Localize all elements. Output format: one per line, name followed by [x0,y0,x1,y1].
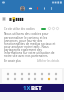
button[interactable] [13,77,17,81]
button[interactable]: More options [49,6,54,11]
staticText: BET [31,84,42,92]
button[interactable] [6,77,10,81]
button[interactable] [13,72,17,76]
button[interactable] [47,72,51,76]
button[interactable] [40,72,44,76]
button[interactable] [20,77,24,81]
staticText: Ce site utilise des cookies [4,27,35,30]
button[interactable]: Tabs [28,6,33,11]
button[interactable] [33,77,37,81]
button[interactable]: 1xBET advertisement [0,84,64,92]
button[interactable] [27,77,31,81]
staticText: Nous utilisons des cookies pour personna… [4,32,60,57]
button[interactable] [47,77,51,81]
button[interactable] [54,72,58,76]
staticText: 1X [23,84,31,92]
button[interactable] [20,72,24,76]
button[interactable]: Account [20,6,25,11]
button[interactable] [27,72,31,76]
button[interactable]: Menu [2,17,6,21]
staticText: Afficher les details [37,59,60,63]
button[interactable]: Bookmark [35,6,40,11]
button[interactable]: Consent toggle [41,28,46,30]
button[interactable] [54,77,58,81]
button[interactable] [33,72,37,76]
button[interactable] [40,77,44,81]
button[interactable]: Downloads [42,6,47,11]
staticText: En savoir plus [4,59,21,63]
button[interactable] [6,72,10,76]
